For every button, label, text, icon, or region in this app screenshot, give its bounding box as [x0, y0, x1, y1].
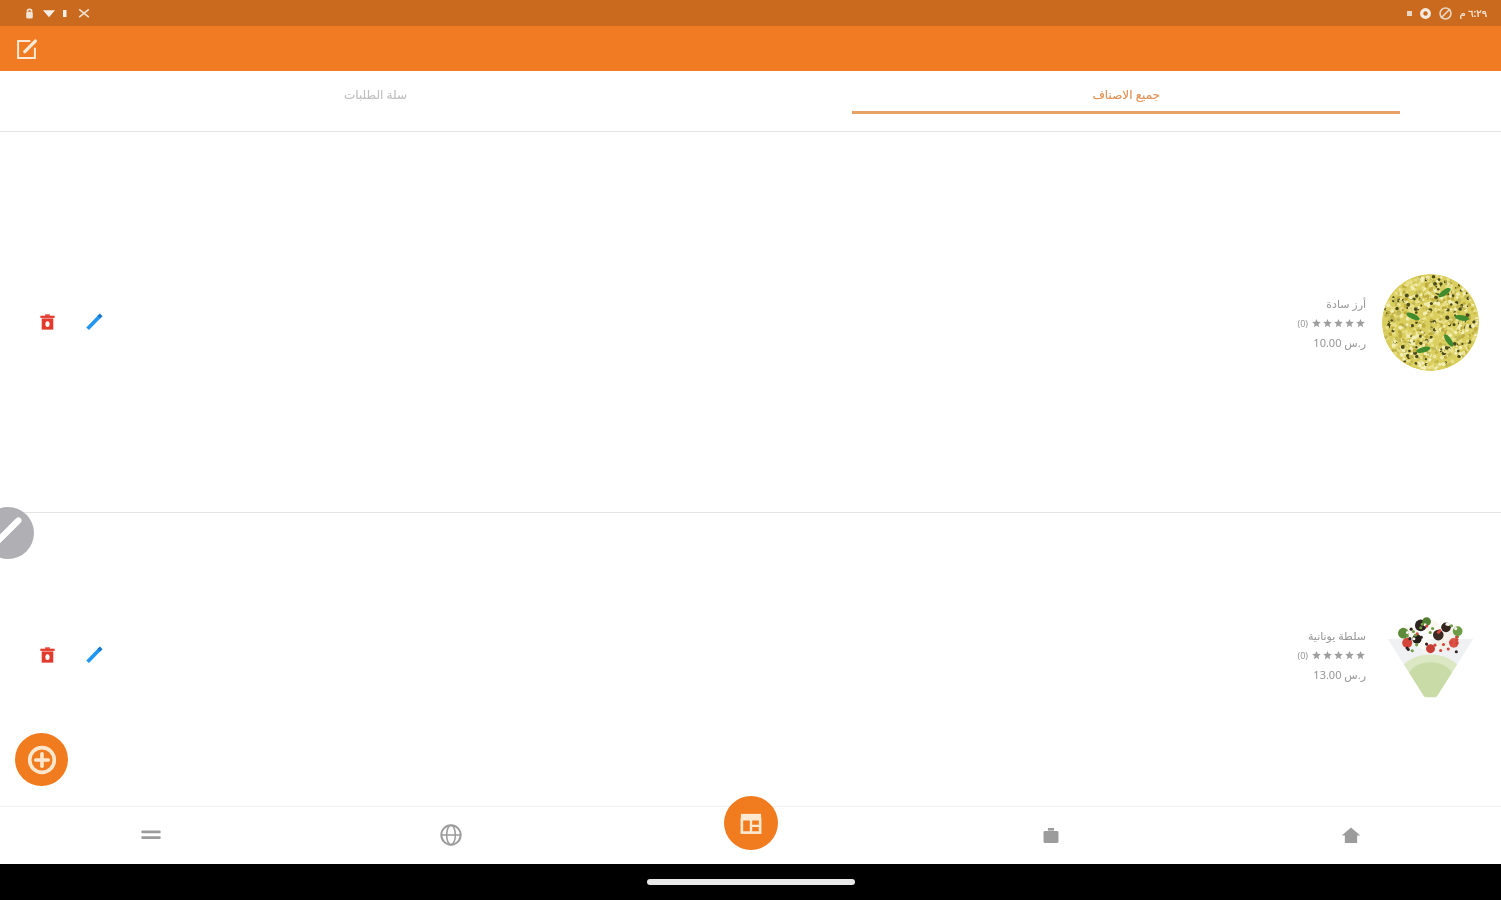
staticText: (0) — [1297, 649, 1308, 661]
button[interactable]: Menu — [0, 806, 301, 864]
button[interactable]: Edit — [77, 305, 111, 339]
button[interactable]: Home — [1201, 806, 1501, 864]
button[interactable]: Language — [301, 806, 601, 864]
button[interactable]: Delete — [30, 305, 64, 339]
button[interactable]: Add item — [15, 733, 68, 786]
staticText: سلة الطلبات — [344, 86, 407, 102]
button[interactable]: أرز سادة — [0, 132, 1501, 512]
staticText: أرز سادة — [1326, 296, 1366, 311]
button[interactable]: جميع الاصناف — [750, 71, 1501, 131]
button[interactable]: Delete — [30, 638, 64, 672]
staticText: 10.00 ر.س — [1313, 335, 1366, 350]
button[interactable]: سلة الطلبات — [0, 71, 750, 131]
button[interactable]: Orders — [901, 806, 1201, 864]
staticText: ٦:٢٩ م — [1459, 6, 1487, 20]
button[interactable]: Toggle panel — [0, 507, 34, 559]
button[interactable]: Edit — [77, 638, 111, 672]
button[interactable]: سلطة يونانية — [0, 513, 1501, 796]
button[interactable]: Compose — [8, 31, 44, 67]
button[interactable]: Store — [724, 796, 778, 850]
staticText: (0) — [1297, 317, 1308, 329]
staticText: جميع الاصناف — [1092, 86, 1160, 102]
staticText: 13.00 ر.س — [1313, 667, 1366, 682]
staticText: سلطة يونانية — [1307, 628, 1366, 643]
